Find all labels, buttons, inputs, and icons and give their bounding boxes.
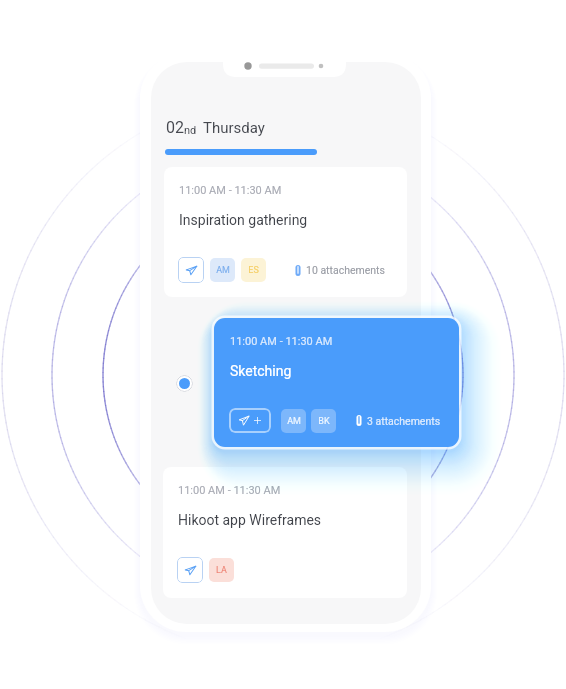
button[interactable]: 11:00 AM - 11:30 AM	[163, 467, 407, 598]
button[interactable]: Send	[177, 557, 203, 583]
staticText: 02	[166, 118, 184, 137]
button[interactable]: Add participant	[229, 408, 271, 433]
staticText: 11:00 AM - 11:30 AM	[178, 484, 281, 497]
staticText: 11:00 AM - 11:30 AM	[230, 335, 333, 348]
staticText: Hikoot app Wireframes	[178, 512, 322, 528]
staticText: Inspiration gathering	[179, 212, 308, 228]
button[interactable]: 11:00 AM - 11:30 AM	[214, 318, 459, 447]
staticText: 11:00 AM - 11:30 AM	[179, 184, 282, 197]
button[interactable]: BK	[311, 409, 336, 433]
staticText: nd	[184, 124, 197, 137]
staticText: LA	[216, 565, 227, 576]
staticText: 10 attachements	[306, 264, 385, 276]
button[interactable]: 02	[166, 118, 265, 137]
staticText: AM	[287, 416, 301, 427]
button[interactable]: ES	[241, 258, 266, 282]
staticText: 3 attachements	[367, 415, 441, 427]
button[interactable]: AM	[281, 409, 306, 433]
button[interactable]: Send	[178, 257, 204, 283]
staticText: ES	[248, 265, 259, 276]
staticText: BK	[318, 416, 330, 427]
button[interactable]: Selected event	[176, 375, 193, 392]
staticText: Thursday	[203, 119, 265, 137]
button[interactable]: LA	[209, 558, 234, 582]
button[interactable]: AM	[210, 258, 235, 282]
staticText: Sketching	[230, 363, 292, 379]
staticText: AM	[216, 265, 230, 276]
button[interactable]: 11:00 AM - 11:30 AM	[164, 167, 407, 297]
